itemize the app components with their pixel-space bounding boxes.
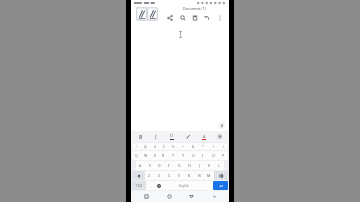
staticText: E — [154, 153, 156, 158]
button[interactable]: I — [198, 151, 208, 160]
button[interactable]: ?123 — [132, 181, 146, 190]
staticText: M — [207, 173, 211, 178]
staticText: W — [144, 153, 148, 158]
button[interactable]: Back — [183, 191, 199, 202]
button[interactable]: P — [218, 151, 228, 160]
button[interactable]: $ — [159, 143, 168, 150]
staticText: F — [168, 163, 170, 168]
staticText: X — [158, 173, 161, 178]
button[interactable]: V — [174, 171, 184, 180]
button[interactable]: Text color — [198, 131, 210, 142]
button[interactable]: M — [204, 171, 214, 180]
staticText: I — [202, 153, 204, 158]
staticText: Y — [182, 153, 185, 158]
button[interactable]: D — [154, 161, 164, 170]
staticText: % — [172, 145, 175, 149]
button[interactable]: ^ — [178, 143, 188, 150]
button[interactable]: Document preview — [136, 7, 158, 21]
staticText: B — [188, 173, 191, 178]
button[interactable]: J — [194, 161, 204, 170]
button[interactable]: Save — [190, 13, 199, 22]
button[interactable]: * — [198, 143, 208, 150]
button[interactable]: Q — [132, 151, 141, 160]
button[interactable]: Change language — [154, 181, 163, 190]
button[interactable]: List — [213, 131, 225, 142]
staticText: R — [162, 153, 165, 158]
staticText: H — [188, 163, 191, 168]
button[interactable]: K — [204, 161, 214, 170]
button[interactable]: S — [145, 161, 154, 170]
staticText: * — [202, 145, 204, 149]
button[interactable]: Share — [165, 13, 174, 22]
button[interactable]: Z — [145, 171, 154, 180]
button[interactable]: N — [194, 171, 204, 180]
button[interactable]: C — [164, 171, 174, 180]
button[interactable]: Shift — [132, 171, 145, 180]
button[interactable]: B — [184, 171, 194, 180]
staticText: L — [218, 163, 220, 168]
button[interactable]: More options — [215, 13, 224, 22]
staticText: ( — [213, 145, 214, 149]
button[interactable]: L — [214, 161, 224, 170]
staticText: @ — [144, 145, 147, 149]
staticText: O — [212, 153, 215, 158]
button[interactable]: U — [188, 151, 198, 160]
staticText: ! — [136, 145, 137, 149]
button[interactable]: English — [163, 181, 205, 190]
staticText: T — [172, 153, 174, 158]
button[interactable]: A — [136, 161, 145, 170]
staticText: Q — [135, 153, 138, 158]
button[interactable]: T — [168, 151, 178, 160]
staticText: V — [178, 173, 181, 178]
staticText: U — [170, 133, 174, 139]
staticText: & — [192, 145, 195, 149]
staticText: P — [222, 153, 225, 158]
staticText: ^ — [182, 145, 184, 149]
staticText: A — [139, 163, 142, 168]
button[interactable]: X — [154, 171, 164, 180]
button[interactable]: Highlight — [182, 131, 194, 142]
staticText: # — [154, 145, 156, 149]
button[interactable]: R — [159, 151, 168, 160]
staticText: S — [149, 163, 151, 168]
button[interactable]: Home — [161, 191, 177, 202]
button[interactable]: Y — [178, 151, 188, 160]
button[interactable]: Backspace — [214, 171, 228, 180]
button[interactable]: ( — [208, 143, 218, 150]
button[interactable]: O — [208, 151, 218, 160]
staticText: U — [192, 153, 195, 158]
button[interactable]: Undo — [202, 13, 211, 22]
button[interactable]: & — [188, 143, 198, 150]
button[interactable]: ! — [132, 143, 141, 150]
staticText: K — [208, 163, 211, 168]
button[interactable]: H — [184, 161, 194, 170]
staticText: B — [139, 134, 143, 140]
button[interactable]: W — [141, 151, 150, 160]
button[interactable]: Search — [178, 13, 187, 22]
staticText: ) — [223, 145, 224, 149]
button[interactable]: # — [150, 143, 159, 150]
button[interactable]: Hide keyboard — [206, 191, 222, 202]
button[interactable]: , — [146, 181, 154, 190]
button[interactable]: Underline — [166, 131, 178, 142]
button[interactable]: @ — [141, 143, 150, 150]
button[interactable]: Recents — [138, 191, 154, 202]
button[interactable]: Bold — [135, 131, 147, 142]
button[interactable]: Voice input — [218, 122, 225, 129]
button[interactable]: E — [150, 151, 159, 160]
staticText: I — [155, 134, 157, 140]
staticText: J — [199, 163, 200, 168]
button[interactable]: % — [168, 143, 178, 150]
staticText: G — [178, 163, 181, 168]
button[interactable]: ) — [218, 143, 228, 150]
button[interactable]: Italic — [150, 131, 162, 142]
staticText: English — [179, 184, 189, 188]
staticText: $ — [163, 145, 165, 149]
button[interactable]: G — [174, 161, 184, 170]
staticText: Document (1) — [183, 6, 206, 11]
staticText: ?123 — [136, 184, 143, 188]
staticText: N — [198, 173, 201, 178]
button[interactable]: Enter — [213, 181, 228, 190]
button[interactable]: F — [164, 161, 174, 170]
